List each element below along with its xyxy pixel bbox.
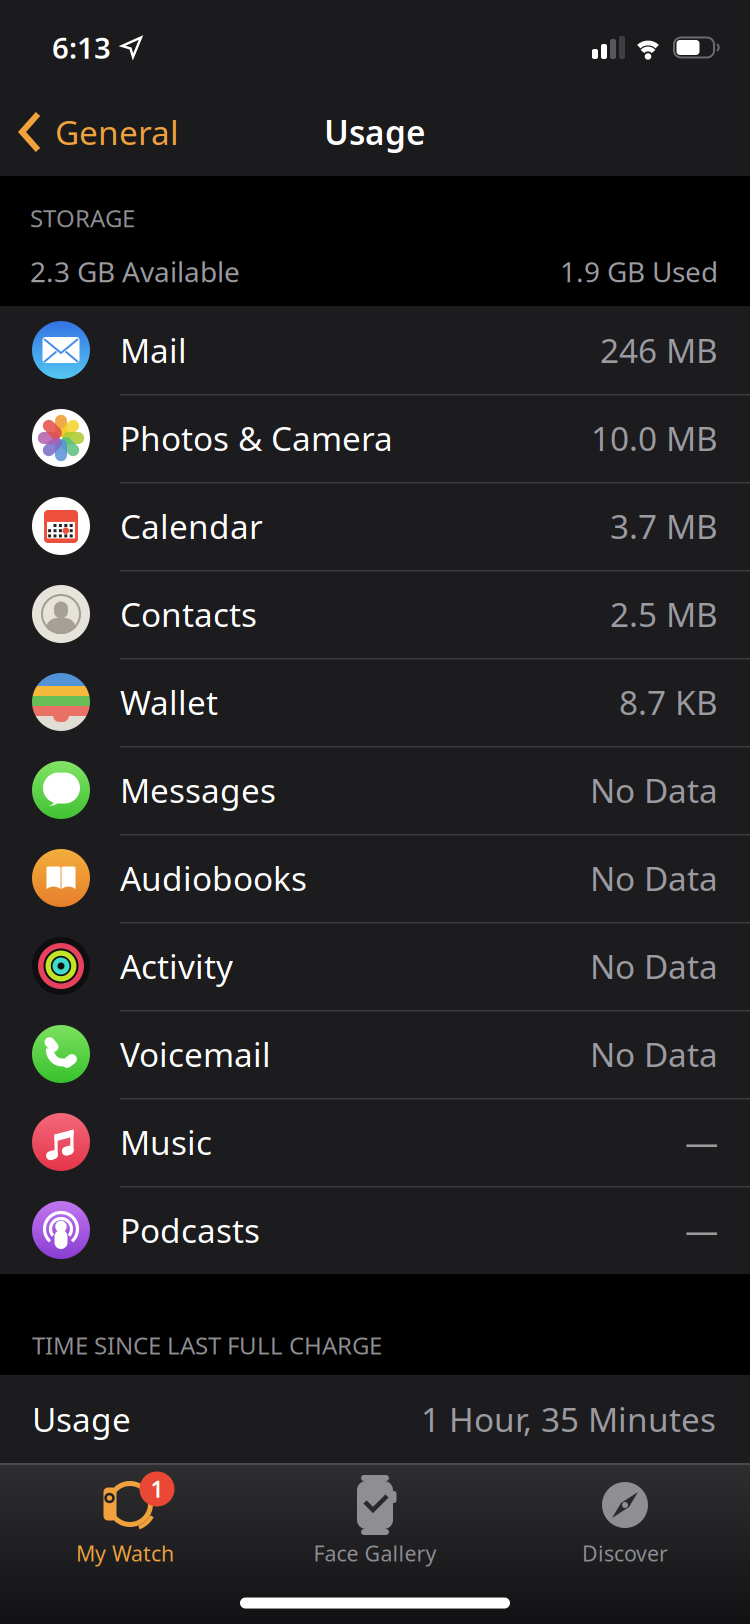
staticText: Audiobooks	[120, 856, 307, 900]
staticText: 1 Hour, 35 Minutes	[421, 1397, 716, 1441]
staticText: My Watch	[76, 1539, 174, 1567]
staticText: Photos & Camera	[120, 416, 393, 460]
staticText: No Data	[590, 856, 718, 900]
staticText: Music	[120, 1120, 212, 1164]
staticText: No Data	[590, 944, 718, 988]
staticText: Wallet	[120, 680, 218, 724]
staticText: —	[685, 1120, 718, 1164]
staticText: Usage	[324, 110, 426, 154]
staticText: 6:13	[52, 28, 111, 67]
staticText: Calendar	[120, 504, 263, 548]
staticText: 1.9 GB Used	[560, 253, 718, 290]
staticText: —	[685, 1208, 718, 1252]
staticText: Discover	[582, 1539, 668, 1567]
button[interactable]: Discover	[500, 1465, 750, 1567]
staticText: General	[55, 110, 179, 154]
staticText: Voicemail	[120, 1032, 271, 1076]
staticText: 1	[150, 1474, 163, 1504]
staticText: 8.7 KB	[619, 680, 718, 724]
staticText: Podcasts	[120, 1208, 260, 1252]
button[interactable]: Face Gallery	[250, 1465, 500, 1567]
staticText: Mail	[120, 328, 187, 372]
staticText: Messages	[120, 768, 276, 812]
staticText: Face Gallery	[313, 1539, 436, 1567]
staticText: No Data	[590, 768, 718, 812]
staticText: 2.5 MB	[610, 592, 718, 636]
staticText: 3.7 MB	[610, 504, 718, 548]
button[interactable]: My Watch	[0, 1465, 250, 1567]
staticText: TIME SINCE LAST FULL CHARGE	[32, 1329, 382, 1361]
staticText: 2.3 GB Available	[30, 253, 240, 290]
staticText: Usage	[32, 1397, 131, 1441]
staticText: 246 MB	[600, 328, 718, 372]
staticText: Activity	[120, 944, 233, 988]
staticText: Contacts	[120, 592, 257, 636]
button[interactable]: Back to General	[0, 110, 179, 154]
staticText: STORAGE	[30, 202, 135, 234]
staticText: No Data	[590, 1032, 718, 1076]
staticText: 10.0 MB	[591, 416, 718, 460]
